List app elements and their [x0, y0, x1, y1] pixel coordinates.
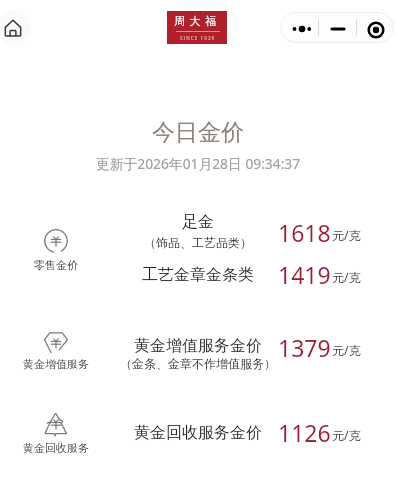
button[interactable]: 黄金回收服务金价	[113, 423, 283, 443]
staticText: 元/克	[332, 342, 361, 358]
button[interactable]: More	[280, 12, 318, 43]
staticText: 黄金增值服务金价	[134, 336, 262, 356]
button[interactable]: 黄金回收服务	[0, 412, 112, 458]
staticText: （饰品、工艺品类）	[144, 235, 252, 250]
staticText: 更新于2026年01月28日 09:34:37	[0, 154, 396, 173]
staticText: 1618	[278, 217, 331, 248]
button[interactable]: 黄金增值服务	[0, 331, 112, 377]
staticText: 元/克	[332, 269, 361, 285]
button[interactable]: Minimize	[319, 12, 356, 43]
staticText: 1379	[278, 332, 331, 363]
staticText: 1419	[278, 259, 331, 290]
button[interactable]: 零售金价	[0, 229, 112, 275]
staticText: 工艺金章金条类	[142, 265, 254, 285]
staticText: 周大福	[174, 14, 221, 28]
button[interactable]: Chow Tai Fook logo	[167, 11, 227, 44]
staticText: 元/克	[332, 227, 361, 243]
button[interactable]: 工艺金章金条类	[113, 265, 283, 285]
button[interactable]: Close	[357, 12, 394, 43]
staticText: 今日金价	[0, 118, 396, 147]
staticText: 元/克	[332, 427, 361, 443]
button[interactable]: 黄金增值服务金价	[113, 336, 283, 371]
staticText: SINCE 1929	[180, 35, 216, 41]
staticText: 1126	[278, 417, 331, 448]
staticText: 黄金回收服务金价	[134, 423, 262, 443]
staticText: （金条、金章不作增值服务）	[120, 356, 276, 371]
staticText: 足金	[182, 212, 214, 232]
staticText: 黄金回收服务	[0, 441, 112, 455]
staticText: 零售金价	[0, 258, 112, 272]
button[interactable]: Home	[0, 10, 31, 45]
button[interactable]: 足金	[113, 212, 283, 250]
staticText: 黄金增值服务	[0, 357, 112, 371]
